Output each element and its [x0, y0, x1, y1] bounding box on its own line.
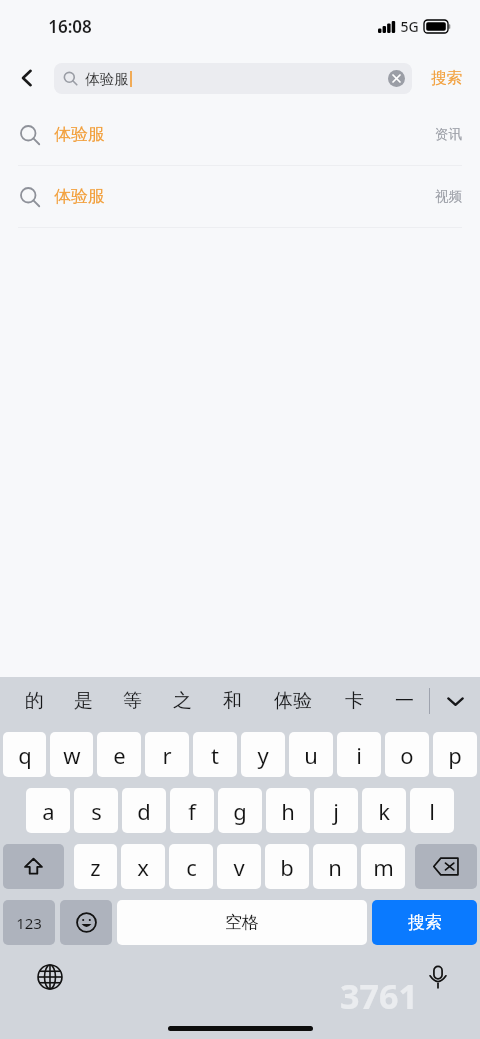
staticText: 空格: [225, 912, 259, 933]
button[interactable]: k: [362, 788, 406, 833]
staticText: e: [113, 740, 126, 770]
staticText: m: [373, 852, 394, 882]
staticText: n: [328, 852, 342, 882]
button[interactable]: Back: [0, 52, 54, 104]
button[interactable]: z: [74, 844, 117, 889]
button[interactable]: f: [170, 788, 214, 833]
button[interactable]: 123: [3, 900, 55, 945]
button[interactable]: 空格: [117, 900, 367, 945]
button[interactable]: p: [433, 732, 477, 777]
button[interactable]: b: [265, 844, 309, 889]
staticText: f: [188, 796, 196, 826]
staticText: 的: [25, 689, 44, 713]
staticText: 123: [16, 913, 42, 933]
staticText: w: [63, 740, 81, 770]
staticText: 体验服: [54, 124, 105, 145]
staticText: 5G: [400, 17, 419, 36]
staticText: z: [90, 852, 101, 882]
staticText: 体验: [274, 689, 312, 713]
staticText: x: [137, 852, 149, 882]
button[interactable]: x: [121, 844, 165, 889]
staticText: 之: [173, 689, 192, 713]
staticText: 一: [395, 689, 414, 713]
staticText: 搜索: [408, 912, 442, 933]
button[interactable]: i: [337, 732, 381, 777]
button[interactable]: 体验服: [0, 104, 480, 165]
staticText: a: [42, 796, 55, 826]
staticText: 体验服: [54, 186, 105, 207]
staticText: 视频: [435, 188, 462, 205]
button[interactable]: r: [145, 732, 189, 777]
staticText: o: [400, 740, 414, 770]
staticText: c: [186, 852, 197, 882]
staticText: 和: [223, 689, 242, 713]
staticText: r: [162, 740, 172, 770]
button[interactable]: 体验: [257, 677, 329, 725]
staticText: 是: [74, 689, 93, 713]
button[interactable]: t: [193, 732, 237, 777]
staticText: s: [91, 796, 102, 826]
button[interactable]: 搜索: [372, 900, 477, 945]
button[interactable]: 体验服: [0, 166, 480, 227]
staticText: u: [304, 740, 318, 770]
button[interactable]: Voice input: [420, 959, 456, 995]
button[interactable]: y: [241, 732, 285, 777]
button[interactable]: Hide keyboard: [430, 677, 480, 725]
button[interactable]: h: [266, 788, 310, 833]
staticText: d: [137, 796, 151, 826]
button[interactable]: e: [97, 732, 141, 777]
button[interactable]: d: [122, 788, 166, 833]
button[interactable]: 卡: [329, 677, 379, 725]
button[interactable]: s: [74, 788, 118, 833]
staticText: j: [333, 796, 339, 826]
button[interactable]: u: [289, 732, 333, 777]
button[interactable]: l: [410, 788, 454, 833]
staticText: t: [211, 740, 219, 770]
staticText: 等: [123, 689, 142, 713]
button[interactable]: 搜索: [412, 52, 480, 104]
button[interactable]: c: [169, 844, 213, 889]
staticText: 3761: [340, 973, 418, 1019]
button[interactable]: v: [217, 844, 261, 889]
button[interactable]: 等: [108, 677, 157, 725]
button[interactable]: m: [361, 844, 405, 889]
button[interactable]: Shift: [3, 844, 64, 889]
button[interactable]: 是: [59, 677, 108, 725]
button[interactable]: 一: [379, 677, 429, 725]
button[interactable]: Clear text: [381, 63, 412, 94]
button[interactable]: 体验服: [54, 63, 412, 94]
staticText: b: [280, 852, 294, 882]
staticText: v: [233, 852, 245, 882]
button[interactable]: Change language: [32, 959, 68, 995]
staticText: h: [281, 796, 295, 826]
button[interactable]: o: [385, 732, 429, 777]
button[interactable]: j: [314, 788, 358, 833]
staticText: 16:08: [48, 15, 92, 38]
button[interactable]: g: [218, 788, 262, 833]
staticText: 卡: [345, 689, 364, 713]
staticText: i: [356, 740, 362, 770]
staticText: l: [429, 796, 435, 826]
button[interactable]: 之: [157, 677, 207, 725]
button[interactable]: q: [3, 732, 46, 777]
staticText: 搜索: [431, 68, 462, 88]
button[interactable]: w: [50, 732, 93, 777]
button[interactable]: a: [26, 788, 70, 833]
staticText: 资讯: [435, 126, 462, 143]
staticText: y: [257, 740, 269, 770]
button[interactable]: 的: [10, 677, 59, 725]
button[interactable]: n: [313, 844, 357, 889]
button[interactable]: Emoji: [60, 900, 112, 945]
staticText: k: [378, 796, 390, 826]
button[interactable]: Backspace: [415, 844, 477, 889]
button[interactable]: 和: [207, 677, 257, 725]
staticText: g: [233, 796, 247, 826]
staticText: p: [448, 740, 462, 770]
staticText: 体验服: [85, 70, 129, 88]
staticText: q: [18, 740, 32, 770]
